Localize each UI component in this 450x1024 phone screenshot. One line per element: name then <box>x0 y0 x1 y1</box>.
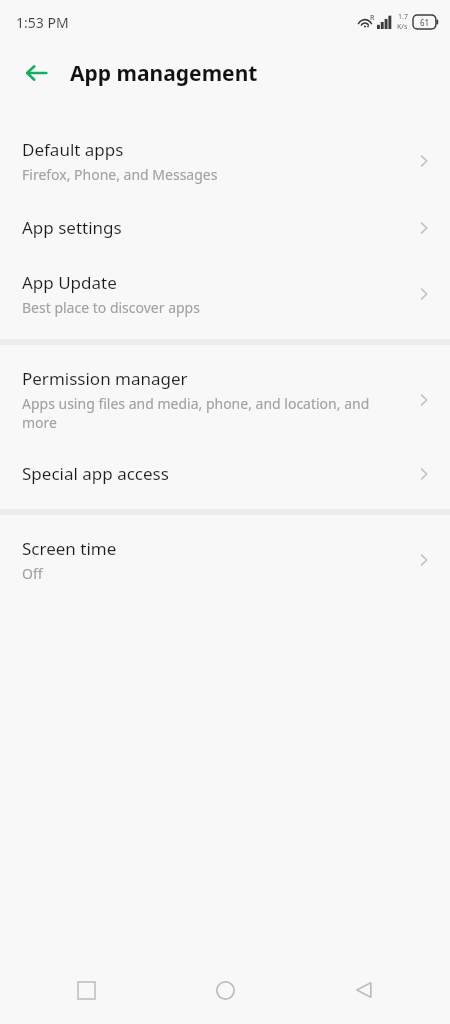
staticText: R <box>370 13 375 23</box>
staticText: Special app access <box>22 462 169 485</box>
staticText: Off <box>22 564 43 583</box>
staticText: Screen time <box>22 537 117 560</box>
staticText: K/s <box>397 22 408 32</box>
staticText: Firefox, Phone, and Messages <box>22 165 218 184</box>
staticText: 61 <box>420 17 430 28</box>
button[interactable]: Default apps <box>0 124 450 200</box>
staticText: App management <box>70 59 258 88</box>
staticText: Permission manager <box>22 367 188 390</box>
staticText: 1.7 <box>398 12 408 22</box>
staticText: App Update <box>22 271 117 294</box>
button[interactable]: Back <box>336 962 392 1018</box>
staticText: Apps using files and media, phone, and l… <box>22 394 378 432</box>
button[interactable]: Permission manager <box>0 351 450 448</box>
button[interactable]: App settings <box>0 200 450 257</box>
staticText: App settings <box>22 216 122 239</box>
button[interactable]: Home <box>197 962 253 1018</box>
staticText: Default apps <box>22 138 124 161</box>
staticText: 1:53 PM <box>16 13 69 32</box>
button[interactable]: App Update <box>0 257 450 333</box>
button[interactable]: Screen time <box>0 521 450 599</box>
button[interactable]: Back <box>12 49 60 97</box>
staticText: Best place to discover apps <box>22 298 200 317</box>
button[interactable]: Special app access <box>0 448 450 503</box>
button[interactable]: Recent apps <box>58 962 114 1018</box>
